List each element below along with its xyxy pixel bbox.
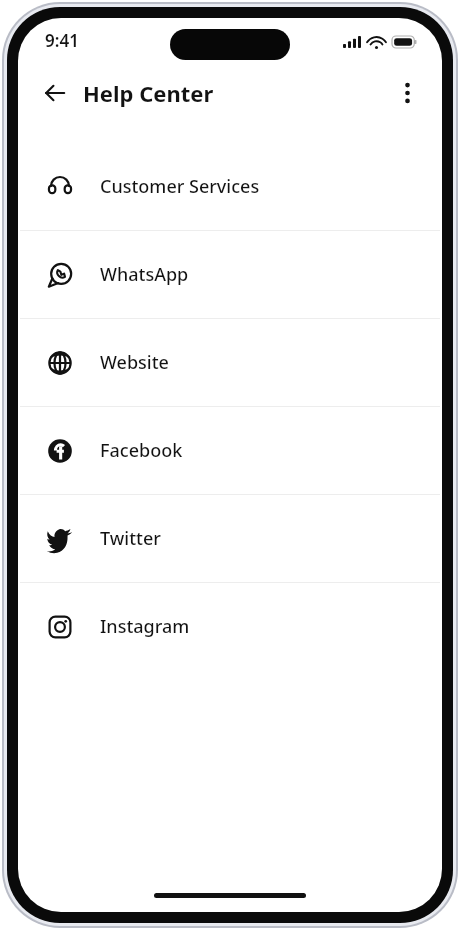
staticText: Help Center: [83, 78, 214, 108]
staticText: Twitter: [100, 526, 161, 551]
button[interactable]: WhatsApp: [18, 231, 442, 318]
staticText: Instagram: [100, 614, 190, 639]
button[interactable]: Facebook: [18, 407, 442, 494]
staticText: Customer Services: [100, 174, 260, 199]
button[interactable]: More options: [390, 76, 424, 110]
staticText: Facebook: [100, 438, 183, 463]
button[interactable]: Customer Services: [18, 143, 442, 230]
button[interactable]: Instagram: [18, 583, 442, 670]
button[interactable]: Back: [38, 76, 72, 110]
button[interactable]: Twitter: [18, 495, 442, 582]
staticText: WhatsApp: [100, 262, 189, 287]
staticText: Website: [100, 350, 169, 375]
staticText: 9:41: [45, 29, 79, 52]
button[interactable]: Website: [18, 319, 442, 406]
